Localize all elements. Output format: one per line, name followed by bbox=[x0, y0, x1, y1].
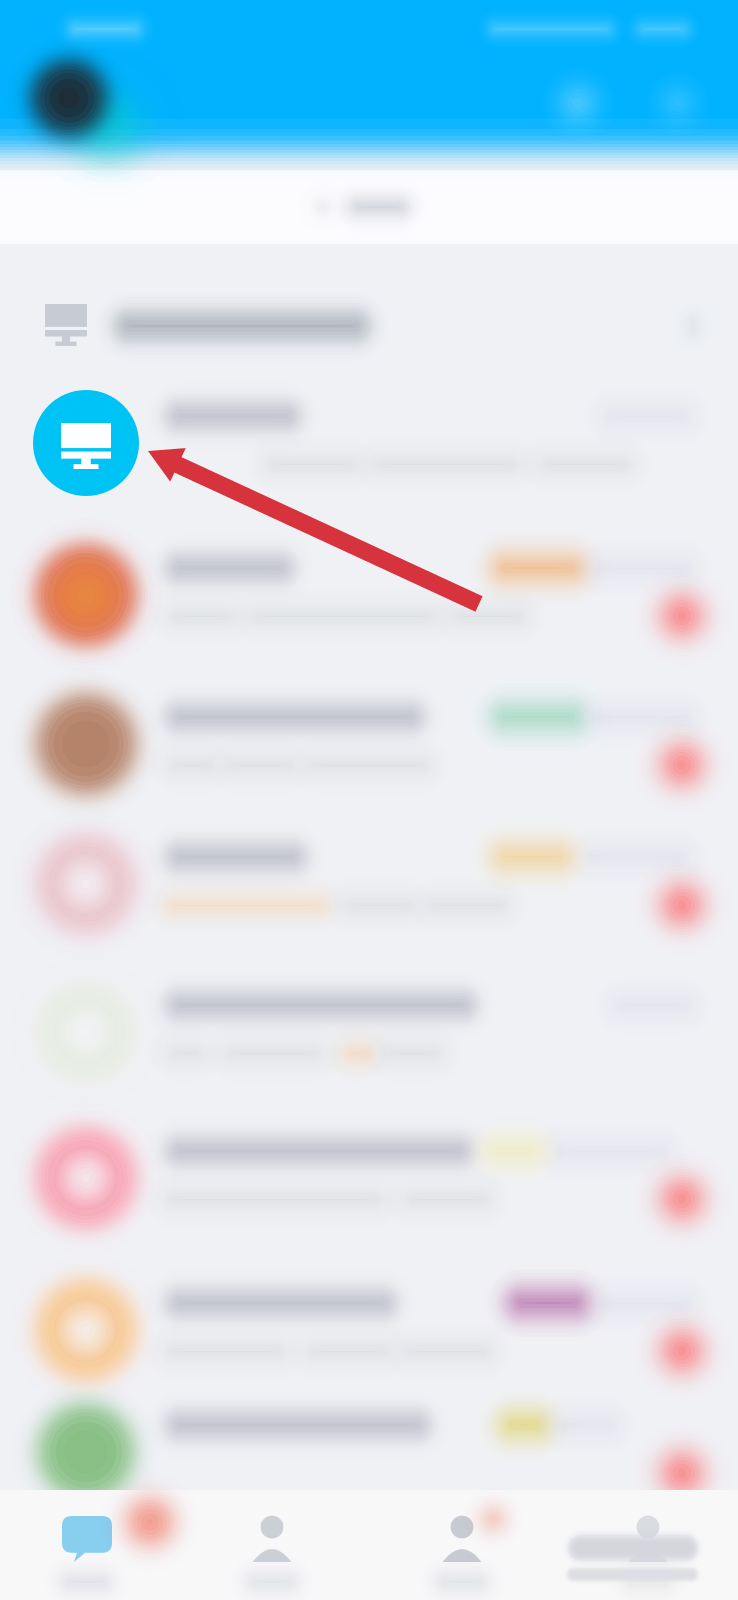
button[interactable]: Add bbox=[660, 85, 696, 121]
button[interactable]: Me bbox=[0, 1490, 184, 1600]
button[interactable]: Profile bbox=[32, 61, 106, 135]
button[interactable]: Discover bbox=[0, 1490, 184, 1600]
button[interactable]: Search bbox=[0, 170, 738, 244]
button[interactable]: Search bbox=[558, 83, 598, 123]
button[interactable] bbox=[0, 286, 738, 376]
button[interactable]: Chats bbox=[0, 1490, 184, 1600]
button[interactable]: Contacts bbox=[0, 1490, 184, 1600]
